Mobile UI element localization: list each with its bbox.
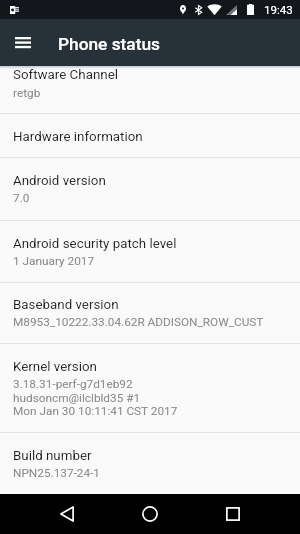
- button[interactable]: Baseband version: [0, 282, 300, 343]
- button[interactable]: Android version: [0, 157, 300, 220]
- button[interactable]: Build number: [0, 432, 300, 494]
- staticText: Android version: [13, 173, 106, 189]
- button[interactable]: Kernel version: [0, 343, 300, 432]
- button[interactable]: Home: [133, 497, 167, 531]
- staticText: Hardware information: [13, 129, 143, 145]
- staticText: hudsoncm@ilclbld35 #1: [13, 391, 141, 405]
- button[interactable]: Recent apps: [216, 497, 250, 531]
- staticText: 7.0: [13, 191, 30, 205]
- staticText: 19:43: [264, 3, 293, 17]
- button[interactable]: Software Channel: [0, 66, 300, 113]
- staticText: Baseband version: [13, 297, 119, 313]
- staticText: Mon Jan 30 10:11:41 CST 2017: [13, 404, 178, 418]
- staticText: 3.18.31-perf-g7d1eb92: [13, 377, 133, 391]
- button[interactable]: Android security patch level: [0, 220, 300, 282]
- staticText: retgb: [13, 86, 41, 100]
- staticText: Kernel version: [13, 359, 97, 375]
- staticText: M8953_10222.33.04.62R ADDISON_ROW_CUST: [13, 315, 264, 329]
- button[interactable]: Open navigation menu: [8, 23, 38, 62]
- staticText: 1 January 2017: [13, 254, 95, 268]
- staticText: Build number: [13, 448, 92, 464]
- button[interactable]: Hardware information: [0, 113, 300, 157]
- button[interactable]: Back: [50, 497, 84, 531]
- staticText: Android security patch level: [13, 236, 177, 252]
- staticText: NPN25.137-24-1: [13, 466, 100, 480]
- staticText: Software Channel: [13, 67, 118, 83]
- staticText: Phone status: [58, 34, 160, 54]
